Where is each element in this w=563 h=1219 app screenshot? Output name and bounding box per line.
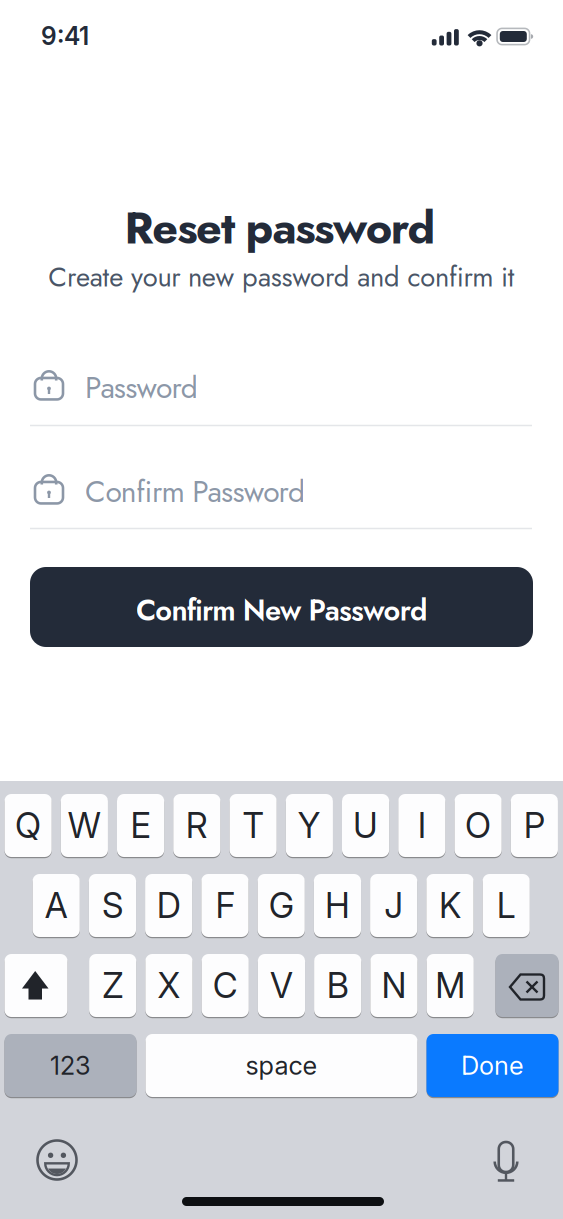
button[interactable]: M	[427, 954, 474, 1017]
staticText: B	[327, 965, 349, 1006]
staticText: H	[325, 885, 350, 926]
staticText: N	[381, 965, 406, 1006]
button[interactable]: A	[33, 874, 80, 937]
button[interactable]: space	[145, 1034, 417, 1097]
staticText: I	[418, 805, 426, 846]
staticText: Q	[15, 805, 41, 846]
button[interactable]: Confirm New Password	[30, 567, 533, 647]
staticText: 123	[50, 1050, 91, 1081]
staticText: S	[102, 885, 123, 926]
button[interactable]: X	[145, 954, 192, 1017]
button[interactable]: Shift	[4, 954, 67, 1017]
staticText: V	[270, 965, 293, 1006]
staticText: 9:41	[41, 21, 89, 51]
staticText: Confirm Password	[85, 470, 305, 513]
button[interactable]: Password	[30, 356, 532, 418]
staticText: R	[186, 805, 208, 846]
button[interactable]: H	[314, 874, 361, 937]
staticText: W	[68, 805, 101, 846]
staticText: D	[157, 885, 181, 926]
staticText: Reset password	[124, 195, 435, 260]
button[interactable]: B	[314, 954, 361, 1017]
button[interactable]: Done	[426, 1034, 558, 1097]
button[interactable]: Emoji	[35, 1138, 79, 1182]
button[interactable]: C	[202, 954, 249, 1017]
staticText: Z	[102, 965, 123, 1006]
staticText: K	[439, 885, 461, 926]
button[interactable]: L	[483, 874, 530, 937]
button[interactable]: G	[258, 874, 305, 937]
button[interactable]: Q	[4, 794, 52, 857]
staticText: C	[213, 965, 238, 1006]
staticText: O	[465, 805, 491, 846]
button[interactable]: I	[398, 794, 445, 857]
staticText: U	[353, 805, 378, 846]
staticText: space	[245, 1050, 317, 1081]
staticText: M	[435, 965, 465, 1006]
button[interactable]: Y	[286, 794, 333, 857]
staticText: Done	[461, 1050, 524, 1081]
button[interactable]: J	[370, 874, 417, 937]
staticText: A	[45, 885, 68, 926]
staticText: Y	[298, 805, 321, 846]
staticText: J	[384, 885, 403, 926]
button[interactable]: T	[229, 794, 277, 857]
button[interactable]: 123	[4, 1034, 136, 1097]
staticText: G	[269, 885, 294, 926]
button[interactable]: E	[117, 794, 164, 857]
button[interactable]: D	[145, 874, 192, 937]
button[interactable]: O	[454, 794, 502, 857]
button[interactable]: V	[258, 954, 305, 1017]
staticText: Create your new password and confirm it	[48, 257, 515, 297]
button[interactable]: Dictate	[491, 1138, 521, 1182]
button[interactable]: R	[173, 794, 220, 857]
staticText: E	[131, 805, 151, 846]
staticText: Confirm New Password	[136, 589, 427, 631]
staticText: P	[524, 805, 545, 846]
button[interactable]: F	[201, 874, 248, 937]
staticText: Password	[85, 366, 198, 409]
button[interactable]: S	[89, 874, 136, 937]
button[interactable]: U	[342, 794, 389, 857]
staticText: L	[497, 885, 516, 926]
button[interactable]: P	[511, 794, 558, 857]
staticText: F	[215, 885, 234, 926]
button[interactable]: K	[426, 874, 473, 937]
staticText: T	[243, 805, 264, 846]
button[interactable]: Delete	[495, 954, 558, 1017]
button[interactable]: Z	[89, 954, 136, 1017]
button[interactable]: N	[370, 954, 417, 1017]
button[interactable]: W	[61, 794, 108, 857]
staticText: X	[157, 965, 180, 1006]
button[interactable]: Confirm Password	[30, 460, 532, 522]
